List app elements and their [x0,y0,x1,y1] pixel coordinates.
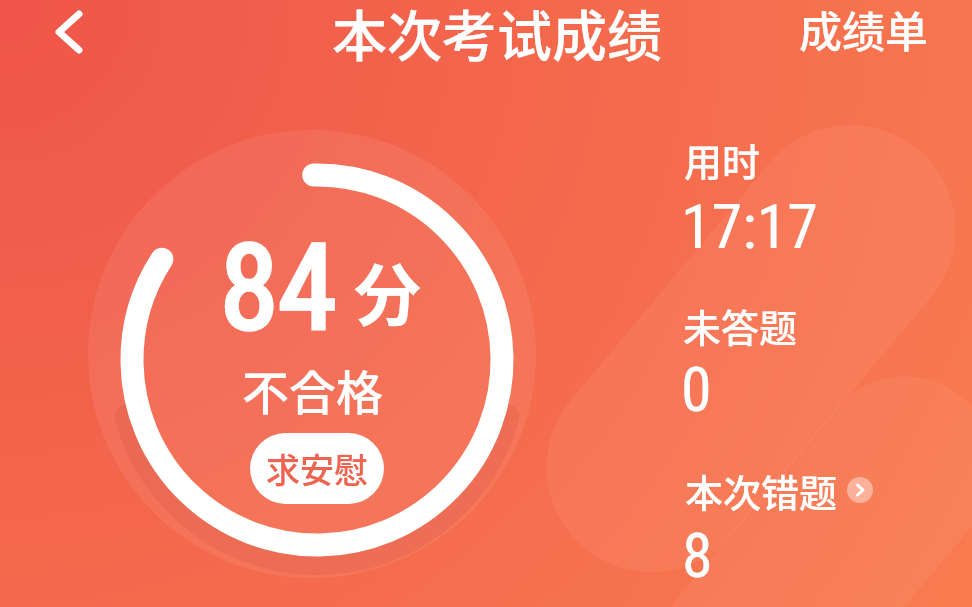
staticText: 17:17 [681,190,818,263]
staticText: 分 [354,242,421,339]
staticText: 84 [220,220,337,358]
staticText: 8 [682,519,713,592]
button[interactable] [847,477,873,503]
staticText: 不合格 [242,355,383,423]
button[interactable]: 本次错题 [685,463,838,518]
staticText: 成绩单 [799,0,928,60]
staticText: 求安慰 [266,444,368,493]
button[interactable]: 求安慰 [250,433,384,504]
staticText: 本次考试成绩 [332,0,663,72]
staticText: 用时 [684,132,761,187]
staticText: 0 [681,353,712,426]
staticText: 本次错题 [685,463,838,518]
button[interactable] [37,2,97,62]
staticText: 未答题 [683,298,798,353]
button[interactable] [780,0,950,64]
